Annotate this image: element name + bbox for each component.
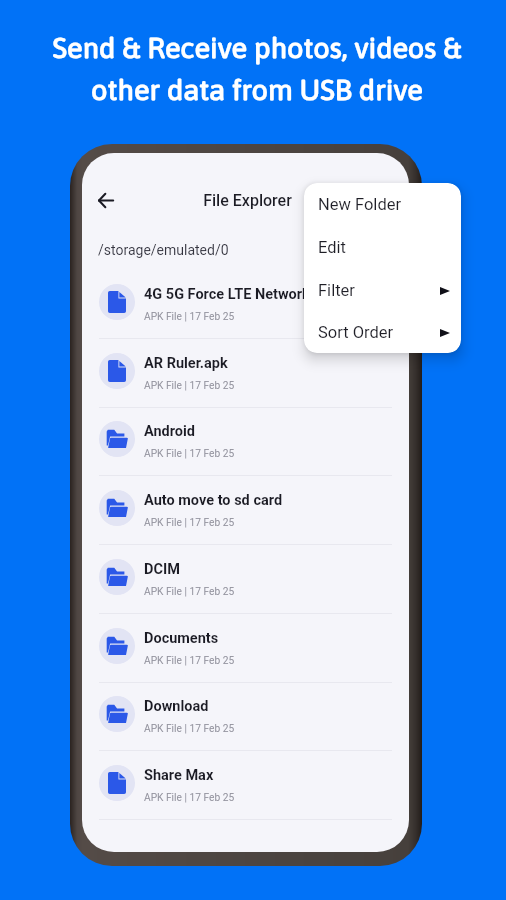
staticText: other data from USB drive (4, 73, 506, 106)
button[interactable]: Documents (82, 614, 409, 683)
staticText: APK File | 17 Feb 25 (144, 517, 235, 529)
button[interactable]: AR Ruler.apk (82, 339, 409, 408)
staticText: APK File | 17 Feb 25 (144, 448, 235, 460)
staticText: Documents (144, 630, 219, 647)
button[interactable]: 4G 5G Force LTE Network.apk (82, 270, 409, 339)
staticText: APK File | 17 Feb 25 (144, 586, 235, 598)
staticText: APK File | 17 Feb 25 (144, 723, 235, 735)
staticText: Android (144, 423, 195, 440)
button[interactable]: Sort Order (304, 312, 461, 353)
staticText: AR Ruler.apk (144, 355, 228, 372)
staticText: APK File | 17 Feb 25 (144, 311, 235, 323)
staticText: Filter (318, 281, 355, 300)
staticText: Send & Receive photos, videos & (4, 31, 506, 64)
staticText: New Folder (318, 195, 402, 214)
staticText: DCIM (144, 561, 180, 578)
staticText: /storage/emulated/0 (98, 242, 229, 258)
button[interactable]: Share Max (82, 751, 409, 820)
button[interactable]: Auto move to sd card (82, 476, 409, 545)
staticText: Auto move to sd card (144, 492, 283, 509)
staticText: APK File | 17 Feb 25 (144, 655, 235, 667)
staticText: Edit (318, 238, 346, 257)
staticText: 4G 5G Force LTE Network.apk (144, 286, 338, 303)
button[interactable]: New Folder (304, 183, 461, 226)
button[interactable]: Edit (304, 226, 461, 269)
button[interactable]: Filter (304, 269, 461, 312)
button[interactable]: Android (82, 407, 409, 476)
staticText: Share Max (144, 767, 214, 784)
staticText: Sort Order (318, 323, 394, 342)
button[interactable]: DCIM (82, 545, 409, 614)
staticText: File Explorer (84, 191, 409, 210)
button[interactable]: Back (89, 183, 123, 217)
staticText: APK File | 17 Feb 25 (144, 380, 235, 392)
button[interactable]: Download (82, 682, 409, 751)
staticText: Download (144, 698, 209, 715)
staticText: APK File | 17 Feb 25 (144, 792, 235, 804)
